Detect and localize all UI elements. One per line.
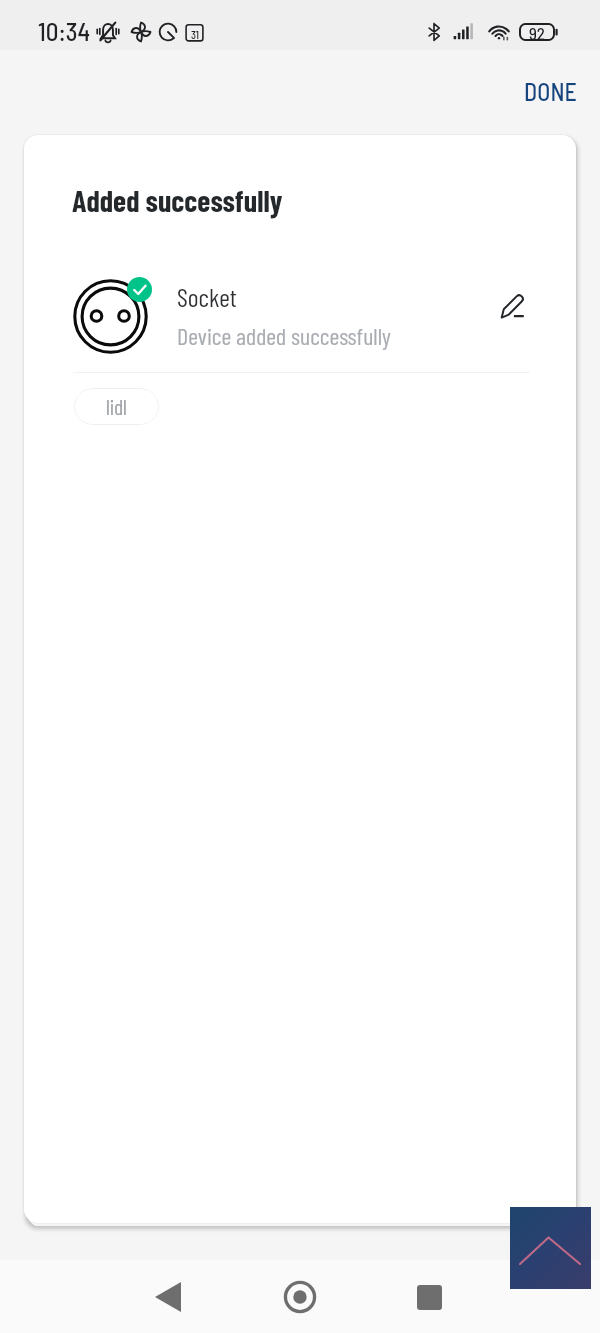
- button[interactable]: Recent apps: [397, 1265, 461, 1329]
- staticText: 92: [529, 23, 546, 39]
- button[interactable]: lidl: [74, 388, 159, 425]
- button[interactable]: Home: [268, 1265, 332, 1329]
- staticText: Device added successfully: [177, 321, 391, 350]
- button[interactable]: DONE: [502, 65, 600, 118]
- staticText: 10:34: [38, 16, 91, 46]
- button[interactable]: Preview: [510, 1207, 591, 1289]
- staticText: lidl: [106, 394, 127, 419]
- staticText: Socket: [177, 281, 237, 312]
- button[interactable]: Edit device name: [494, 286, 534, 326]
- button[interactable]: Back: [136, 1265, 200, 1329]
- button[interactable]: Socket: [24, 273, 576, 357]
- staticText: Added successfully: [72, 182, 283, 218]
- staticText: 31: [191, 27, 199, 41]
- staticText: DONE: [524, 77, 578, 106]
